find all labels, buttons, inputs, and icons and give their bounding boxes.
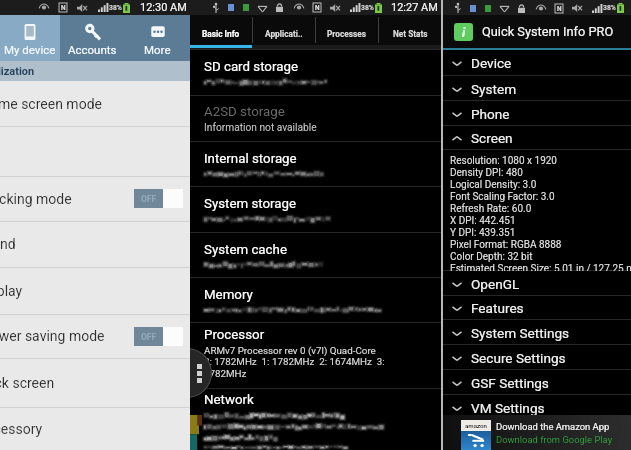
staticText: Device: [471, 55, 512, 71]
button[interactable]: Power saving mode: [0, 314, 190, 358]
staticText: 12:27 AM: [391, 1, 438, 14]
button[interactable]: System: [443, 76, 631, 101]
staticText: N: [315, 4, 320, 12]
button[interactable]: Screen: [443, 126, 631, 150]
staticText: A2SD storage: [204, 104, 285, 120]
button[interactable]: Sound: [0, 221, 190, 267]
staticText: Download the Amazon App: [496, 421, 610, 432]
button[interactable]: [0, 126, 190, 176]
button[interactable]: System storage: [190, 186, 441, 232]
staticText: Internal storage: [204, 151, 297, 167]
staticText: Net Stats: [393, 29, 428, 39]
button[interactable]: Home screen mode: [0, 81, 190, 126]
button[interactable]: i: [443, 15, 631, 48]
staticText: More: [144, 43, 171, 56]
staticText: Blocking mode: [0, 191, 72, 207]
button[interactable]: Secure Settings: [443, 345, 631, 370]
staticText: OFF: [141, 194, 157, 204]
staticText: Phone: [471, 106, 510, 122]
staticText: Power saving mode: [0, 328, 105, 344]
staticText: System storage: [204, 196, 297, 212]
button[interactable]: GSF Settings: [443, 370, 631, 395]
staticText: Display: [0, 283, 23, 299]
button[interactable]: Accessory: [0, 407, 190, 450]
button[interactable]: OpenGL: [443, 271, 631, 296]
staticText: OFF: [141, 332, 157, 342]
staticText: N: [557, 5, 562, 13]
staticText: Accessory: [0, 421, 43, 437]
staticText: SD card storage: [204, 59, 298, 75]
staticText: My device: [4, 43, 56, 56]
button[interactable]: A2SD storage: [190, 95, 441, 141]
staticText: Lock screen: [0, 375, 55, 391]
button[interactable]: Internal storage: [190, 141, 441, 186]
staticText: Quick System Info PRO: [482, 24, 614, 39]
staticText: Basic Info: [202, 29, 240, 39]
button[interactable]: Blocking mode: [0, 176, 190, 221]
staticText: System Settings: [471, 325, 570, 341]
button[interactable]: SD card storage: [190, 49, 441, 95]
button[interactable]: Lock screen: [0, 358, 190, 407]
button[interactable]: Toggle: [134, 327, 183, 346]
staticText: amazon: [465, 422, 488, 429]
staticText: Secure Settings: [471, 350, 566, 366]
button[interactable]: Menu: [190, 348, 212, 398]
button[interactable]: Net Stats: [379, 15, 441, 45]
button[interactable]: System Settings: [443, 320, 631, 345]
button[interactable]: Applicati..: [253, 15, 315, 45]
staticText: N: [61, 4, 66, 12]
button[interactable]: Device: [443, 50, 631, 76]
button[interactable]: Display: [0, 267, 190, 314]
staticText: Memory: [204, 287, 253, 303]
staticText: i: [462, 25, 466, 40]
staticText: 12:30 AM: [140, 1, 187, 14]
button[interactable]: Network: [190, 388, 441, 450]
button[interactable]: More: [125, 15, 190, 61]
staticText: Processes: [327, 29, 367, 39]
button[interactable]: Basic Info: [190, 15, 252, 45]
staticText: Accounts: [68, 43, 117, 56]
staticText: Resolution: 1080 x 1920 Density DPI: 480…: [450, 155, 631, 271]
staticText: 38%: [361, 4, 374, 12]
button[interactable]: Phone: [443, 101, 631, 126]
staticText: Network: [204, 392, 254, 408]
button[interactable]: Toggle: [134, 189, 183, 208]
staticText: Home screen mode: [0, 96, 102, 112]
button[interactable]: Features: [443, 296, 631, 320]
staticText: 38%: [109, 4, 122, 12]
staticText: Personalization: [0, 65, 35, 78]
button[interactable]: Accounts: [60, 15, 125, 61]
staticText: OpenGL: [471, 276, 520, 292]
button[interactable]: amazon: [443, 415, 631, 450]
button[interactable]: Processes: [316, 15, 378, 45]
staticText: VM Settings: [471, 400, 545, 416]
staticText: ARMv7 Processor rev 0 (v7l) Quad-Core 0:…: [204, 345, 385, 379]
staticText: 38%: [603, 4, 616, 12]
button[interactable]: Processor: [190, 322, 441, 388]
staticText: Features: [471, 300, 524, 316]
staticText: Applicati..: [265, 29, 303, 39]
staticText: Download from Google Play: [496, 434, 613, 445]
staticText: Sound: [0, 236, 16, 252]
staticText: Information not available: [204, 122, 317, 134]
staticText: Screen: [471, 130, 513, 146]
button[interactable]: Memory: [190, 277, 441, 322]
button[interactable]: VM Settings: [443, 395, 631, 420]
staticText: System cache: [204, 242, 287, 258]
staticText: System: [471, 81, 517, 97]
staticText: Processor: [204, 327, 265, 343]
button[interactable]: My device: [0, 15, 60, 61]
staticText: GSF Settings: [471, 375, 549, 391]
button[interactable]: System cache: [190, 232, 441, 277]
